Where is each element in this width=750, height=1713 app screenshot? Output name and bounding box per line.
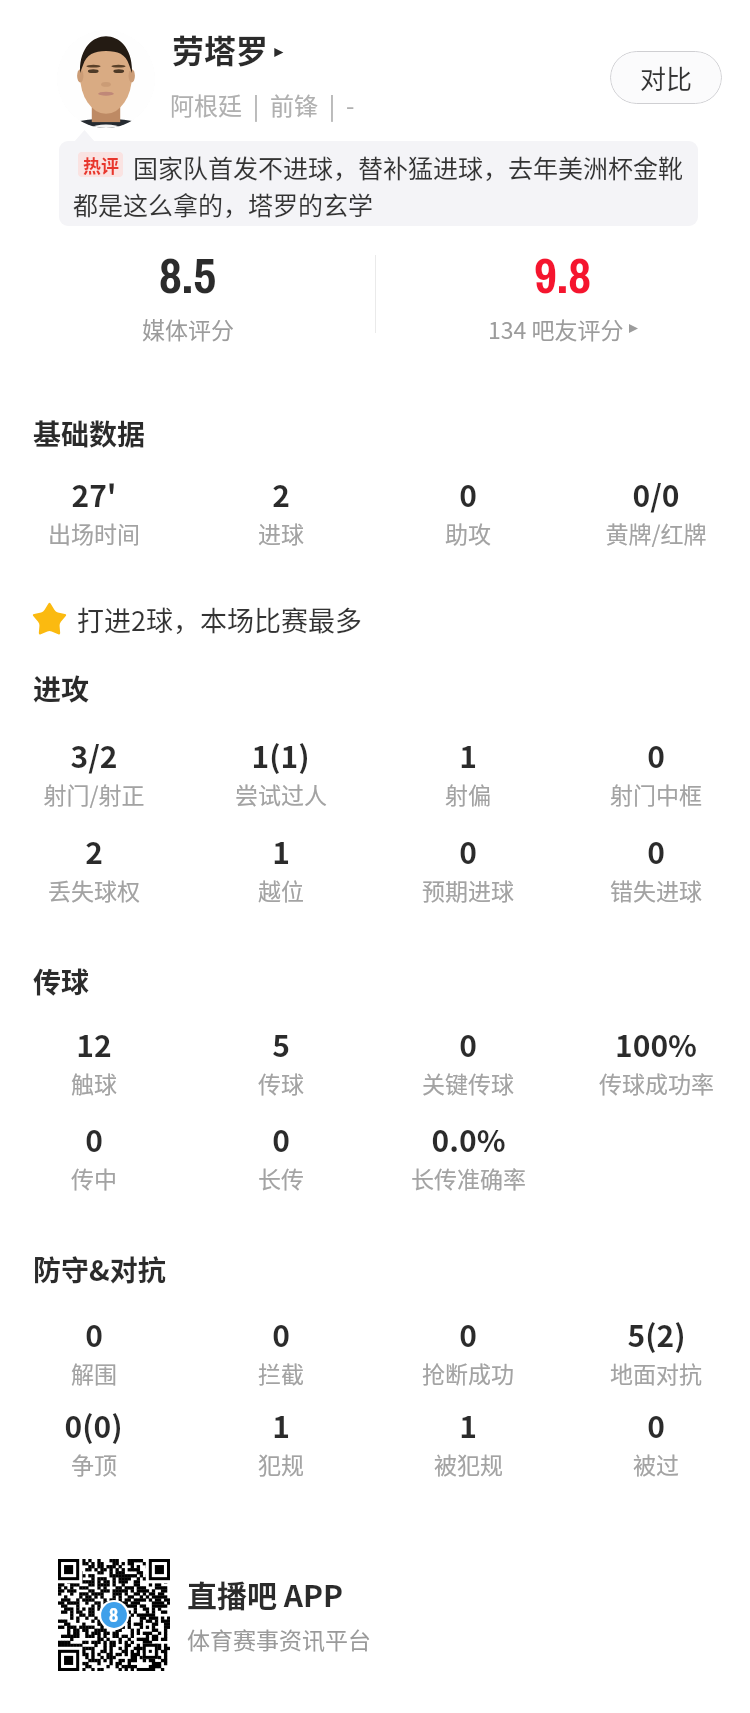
button[interactable]: 0 <box>187 1312 374 1389</box>
button[interactable]: 0 <box>187 1117 374 1194</box>
staticText: 2 <box>272 472 290 515</box>
staticText: 长传准确率 <box>411 1161 526 1194</box>
staticText: 基础数据 <box>33 413 146 454</box>
staticText: 体育赛事资讯平台 <box>187 1622 371 1655</box>
button[interactable]: 0 <box>374 829 562 906</box>
staticText: 5 <box>272 1022 290 1065</box>
button[interactable]: 0 <box>562 829 750 906</box>
button[interactable]: 直播吧 APP <box>187 1572 371 1655</box>
button[interactable]: 2 <box>187 472 374 549</box>
button[interactable]: 5 <box>187 1022 374 1099</box>
button[interactable]: 100% <box>562 1022 750 1099</box>
button[interactable]: 打进2球，本场比赛最多 <box>31 600 362 639</box>
staticText: 传中 <box>71 1161 117 1194</box>
button[interactable]: 劳塔罗 <box>172 26 286 72</box>
staticText: 传球 <box>33 961 90 1002</box>
staticText: 劳塔罗 <box>172 26 269 72</box>
staticText: 9.8 <box>534 241 591 308</box>
button[interactable]: 热评 <box>59 141 698 226</box>
button[interactable]: 1 <box>374 1403 562 1480</box>
button[interactable]: 27' <box>0 472 187 549</box>
staticText: 0 <box>85 1312 103 1355</box>
staticText: 0/0 <box>632 472 680 515</box>
button[interactable]: 1 <box>187 1403 374 1480</box>
button[interactable]: 0(0) <box>0 1403 187 1480</box>
button[interactable]: 0 <box>0 1312 187 1389</box>
button[interactable]: 8.5 <box>0 241 375 351</box>
staticText: 拦截 <box>258 1356 304 1389</box>
staticText: 直播吧 APP <box>187 1572 344 1615</box>
staticText: 3/2 <box>70 733 118 776</box>
button[interactable]: 0 <box>562 1403 750 1480</box>
staticText: 8 <box>109 1601 119 1628</box>
staticText: 1 <box>459 733 477 776</box>
staticText: 都是这么拿的，塔罗的玄学 <box>73 186 374 222</box>
staticText: 热评 <box>83 152 119 177</box>
staticText: 0 <box>272 1117 290 1160</box>
button[interactable]: 0 <box>0 1117 187 1194</box>
staticText: 27' <box>71 472 117 515</box>
staticText: 0 <box>85 1117 103 1160</box>
staticText: 2 <box>85 829 103 872</box>
button[interactable]: 0.0% <box>374 1117 562 1194</box>
staticText: 射门/射正 <box>43 777 145 810</box>
button[interactable]: 5(2) <box>562 1312 750 1389</box>
staticText: 12 <box>76 1022 112 1065</box>
staticText: 越位 <box>258 873 304 906</box>
staticText: 触球 <box>71 1066 117 1099</box>
staticText: 0 <box>647 733 665 776</box>
staticText: 0 <box>459 829 477 872</box>
staticText: 丢失球权 <box>48 873 140 906</box>
staticText: 1 <box>272 1403 290 1446</box>
button[interactable]: 2 <box>0 829 187 906</box>
button[interactable]: 9.8 <box>375 241 750 351</box>
button[interactable]: QR code <box>58 1559 170 1671</box>
staticText: 地面对抗 <box>610 1356 702 1389</box>
staticText: 0(0) <box>64 1403 123 1446</box>
staticText: 1 <box>459 1403 477 1446</box>
staticText: 阿根廷 | 前锋 | - <box>170 87 355 122</box>
staticText: 国家队首发不进球，替补猛进球，去年美洲杯金靴 <box>133 149 684 185</box>
staticText: 8.5 <box>159 241 216 308</box>
button[interactable]: 1 <box>374 733 562 810</box>
staticText: 被过 <box>633 1447 679 1480</box>
button[interactable]: 0 <box>374 1312 562 1389</box>
staticText: 黄牌/红牌 <box>605 516 707 549</box>
staticText: 0 <box>647 829 665 872</box>
staticText: 防守&对抗 <box>33 1249 166 1290</box>
staticText: 错失进球 <box>610 873 702 906</box>
button[interactable]: 1 <box>187 829 374 906</box>
staticText: 被犯规 <box>434 1447 503 1480</box>
button[interactable]: 12 <box>0 1022 187 1099</box>
staticText: 5(2) <box>627 1312 686 1355</box>
button[interactable]: 1(1) <box>187 733 374 810</box>
button[interactable]: 0 <box>374 472 562 549</box>
button[interactable]: 3/2 <box>0 733 187 810</box>
staticText: 预期进球 <box>422 873 514 906</box>
staticText: 解围 <box>71 1356 117 1389</box>
staticText: 对比 <box>640 59 693 97</box>
staticText: 打进2球，本场比赛最多 <box>77 600 362 639</box>
button[interactable]: 0 <box>374 1022 562 1099</box>
button[interactable]: 对比 <box>610 51 722 104</box>
staticText: 关键传球 <box>422 1066 514 1099</box>
button[interactable]: Player photo <box>57 30 155 128</box>
staticText: 1(1) <box>251 733 310 776</box>
staticText: 争顶 <box>71 1447 117 1480</box>
staticText: 抢断成功 <box>422 1356 514 1389</box>
staticText: 100% <box>615 1022 697 1065</box>
button[interactable]: 0 <box>562 733 750 810</box>
staticText: 1 <box>272 829 290 872</box>
staticText: 射偏 <box>445 777 491 810</box>
staticText: 媒体评分 <box>142 312 234 345</box>
staticText: 0.0% <box>431 1117 506 1160</box>
staticText: 助攻 <box>445 516 491 549</box>
staticText: 传球 <box>258 1066 304 1099</box>
button[interactable]: 0/0 <box>562 472 750 549</box>
staticText: 进攻 <box>33 668 90 709</box>
staticText: 进球 <box>258 516 304 549</box>
staticText: 射门中框 <box>610 777 702 810</box>
staticText: 尝试过人 <box>235 777 327 810</box>
staticText: 0 <box>272 1312 290 1355</box>
staticText: 0 <box>459 472 477 515</box>
